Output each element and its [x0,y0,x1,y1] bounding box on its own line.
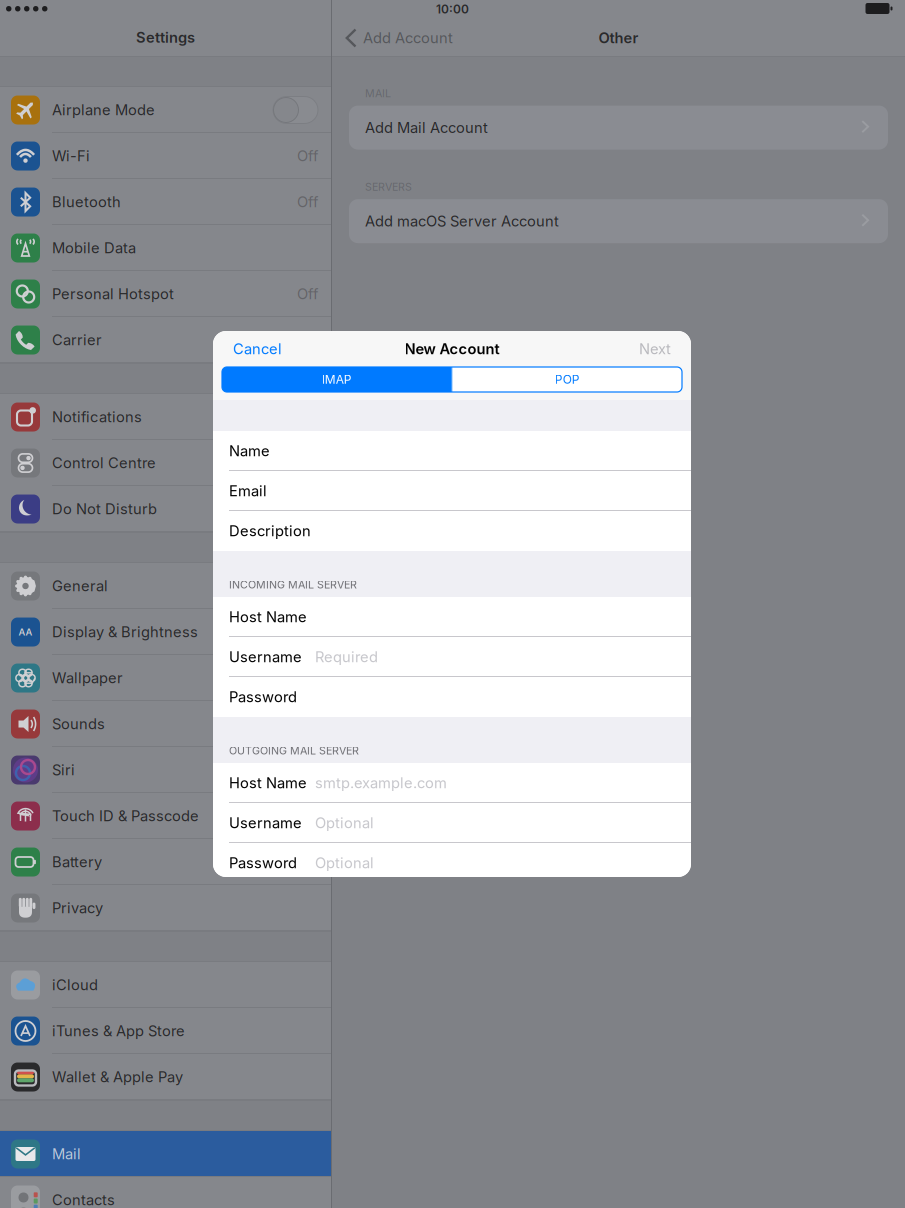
staticText: Off [297,285,318,303]
staticText: AA [18,626,32,637]
button[interactable]: Airplane Mode [0,87,331,133]
staticText: Add Mail Account [365,119,488,136]
staticText: Other [598,29,638,47]
button[interactable]: Sounds [0,701,331,747]
staticText: Username [229,648,302,666]
staticText: Siri [52,761,75,779]
staticText: Email [229,482,267,500]
staticText: Password [229,688,297,706]
staticText: Host Name [229,774,307,792]
staticText: Wallet & Apple Pay [52,1068,183,1086]
button[interactable]: Touch ID & Passcode [0,793,331,839]
button[interactable]: Battery [0,839,331,885]
staticText: Notifications [52,408,142,426]
button[interactable]: Contacts [0,1177,331,1208]
button[interactable]: Carrier [0,317,331,363]
staticText: Wi-Fi [52,147,90,165]
staticText: Description [229,522,311,540]
staticText: Wallpaper [52,669,123,687]
staticText: Sounds [52,715,105,733]
staticText: Control Centre [52,454,156,472]
button[interactable]: POP [452,367,682,392]
staticText: Optional [315,854,374,872]
staticText: Add Account [363,29,453,47]
staticText: Do Not Disturb [52,500,157,518]
staticText: iTunes & App Store [52,1022,185,1040]
button[interactable]: Wi-Fi [0,133,331,179]
staticText: Cancel [233,340,282,358]
staticText: IMAP [322,372,352,387]
staticText: Required [315,648,378,666]
button[interactable]: Mobile Data [0,225,331,271]
button[interactable]: Add Mail Account [332,106,905,150]
staticText: Touch ID & Passcode [52,807,199,825]
button[interactable]: IMAP [222,367,451,392]
staticText: OUTGOING MAIL SERVER [229,744,359,757]
button[interactable]: Add Account [332,24,453,52]
staticText: Contacts [52,1191,115,1208]
staticText: Off [297,147,318,165]
staticText: Name [229,442,270,460]
staticText: Password [229,854,297,872]
button[interactable]: Control Centre [0,440,331,486]
staticText: Carrier [52,331,102,349]
button[interactable]: Bluetooth [0,179,331,225]
staticText: iCloud [52,976,98,994]
button[interactable]: Mail [0,1131,331,1177]
staticText: Add macOS Server Account [365,212,559,230]
staticText: Display & Brightness [52,623,198,641]
staticText: POP [555,372,580,387]
button[interactable]: Add macOS Server Account [332,199,905,243]
button[interactable]: Do Not Disturb [0,486,331,532]
staticText: Mail [52,1145,81,1163]
button[interactable]: Siri [0,747,331,793]
staticText: INCOMING MAIL SERVER [229,578,357,591]
staticText: Optional [315,814,374,832]
staticText: smtp.example.com [315,774,447,792]
button[interactable]: Cancel [213,331,294,367]
staticText: Personal Hotspot [52,285,174,303]
staticText: SERVERS [365,181,412,193]
staticText: Host Name [229,608,307,626]
staticText: Off [297,193,318,211]
button[interactable]: Next [627,331,691,367]
button[interactable]: AA [0,609,331,655]
staticText: Username [229,814,302,832]
button[interactable]: Wallet & Apple Pay [0,1054,331,1100]
button[interactable]: General [0,563,331,609]
staticText: New Account [404,340,499,358]
staticText: Bluetooth [52,193,121,211]
staticText: Settings [136,29,195,46]
button[interactable]: iCloud [0,962,331,1008]
staticText: Airplane Mode [52,101,155,119]
staticText: General [52,577,108,595]
staticText: Privacy [52,899,103,917]
staticText: Battery [52,853,102,871]
staticText: MAIL [365,87,391,100]
button[interactable]: Wallpaper [0,655,331,701]
staticText: Mobile Data [52,239,136,257]
button[interactable]: Personal Hotspot [0,271,331,317]
button[interactable]: iTunes & App Store [0,1008,331,1054]
staticText: Next [639,340,671,358]
button[interactable]: Privacy [0,885,331,931]
staticText: 10:00 [436,2,469,16]
button[interactable]: Notifications [0,394,331,440]
